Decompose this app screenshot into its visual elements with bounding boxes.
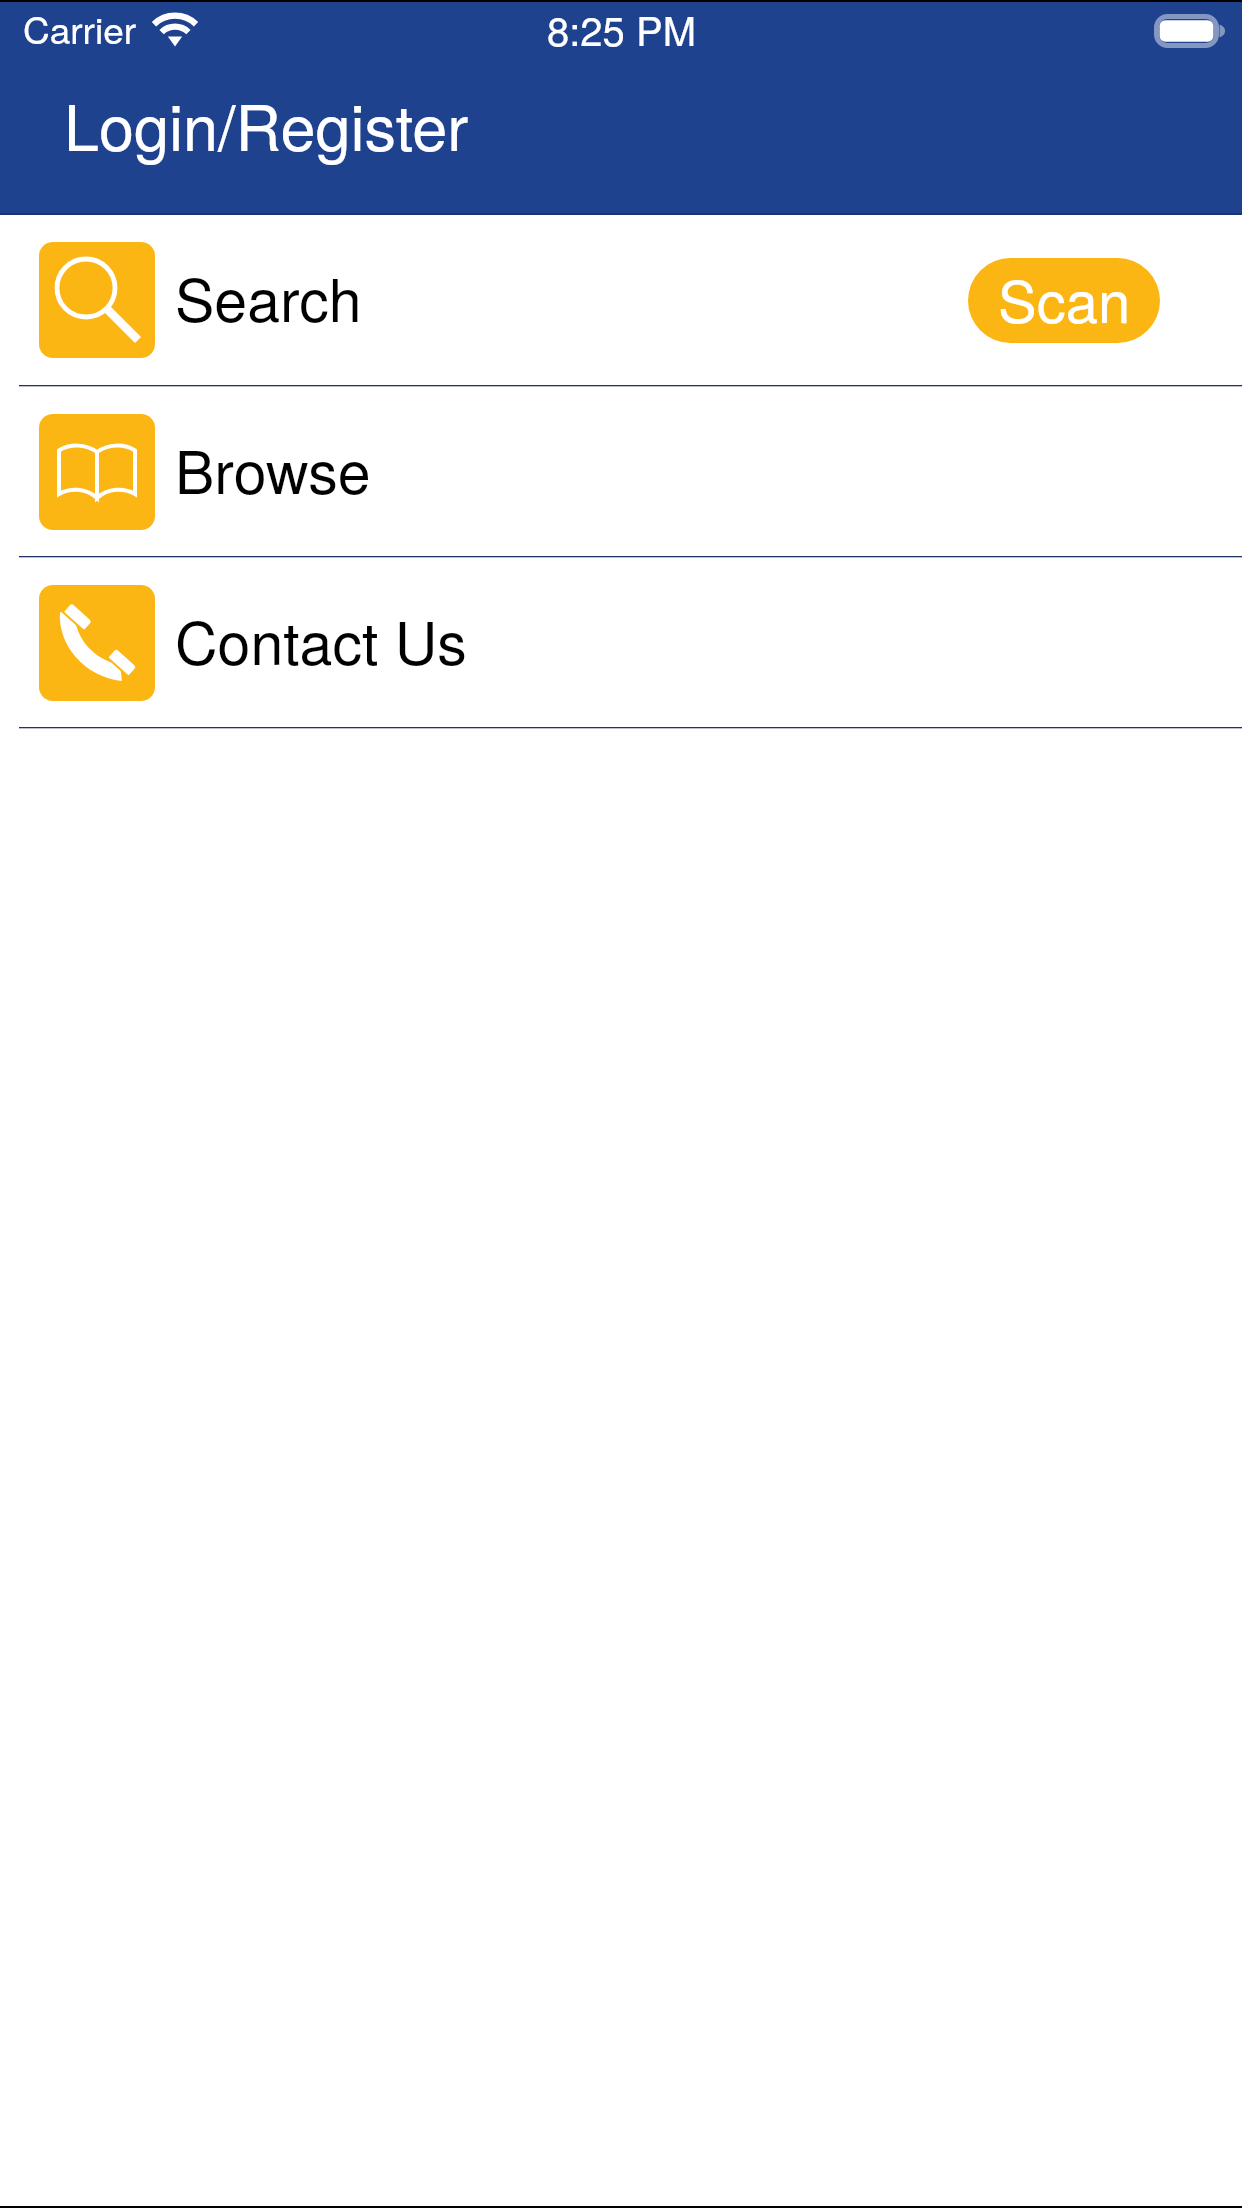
button[interactable]: Scan [968, 258, 1160, 343]
staticText: Carrier [23, 2, 137, 55]
staticText: Browse [175, 426, 371, 510]
button[interactable]: Contact Us [0, 558, 1242, 727]
staticText: 8:25 PM [547, 0, 696, 56]
staticText: Contact Us [175, 597, 467, 681]
button[interactable]: Search [0, 215, 1242, 385]
other: Search [39, 242, 155, 358]
other: Contact Us [39, 585, 155, 701]
other: Browse [57, 442, 137, 503]
staticText: Search [175, 254, 362, 338]
other: Wi-Fi [152, 11, 198, 49]
staticText: Scan [998, 258, 1131, 339]
staticText: Login/Register [64, 79, 469, 169]
other: Battery full [1154, 14, 1227, 48]
button[interactable]: Browse [0, 387, 1242, 556]
